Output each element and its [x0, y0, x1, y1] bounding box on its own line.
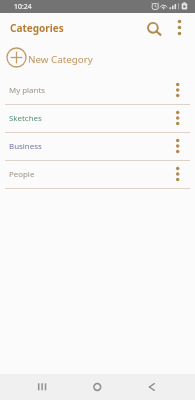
staticText: Categories	[10, 21, 64, 35]
button[interactable]: Back	[134, 374, 170, 400]
button[interactable]: More options	[168, 16, 191, 39]
staticText: New Category	[28, 53, 93, 66]
button[interactable]: Options for People	[164, 162, 190, 188]
staticText: My plants	[9, 85, 46, 96]
button[interactable]: My plants	[0, 77, 195, 104]
staticText: Sketches	[9, 113, 42, 124]
staticText: 10:24	[14, 2, 32, 11]
button[interactable]: People	[0, 161, 195, 188]
button[interactable]: Options for Sketches	[164, 106, 190, 132]
button[interactable]: Options for My plants	[164, 78, 190, 104]
button[interactable]: Business	[0, 133, 195, 160]
button[interactable]: Sketches	[0, 105, 195, 132]
button[interactable]: Home	[79, 374, 115, 400]
staticText: People	[9, 169, 35, 180]
button[interactable]: Search	[141, 16, 165, 40]
staticText: Business	[9, 141, 42, 152]
button[interactable]: Options for Business	[164, 134, 190, 160]
button[interactable]: Recents	[24, 374, 60, 400]
button[interactable]: New Category	[0, 42, 195, 77]
